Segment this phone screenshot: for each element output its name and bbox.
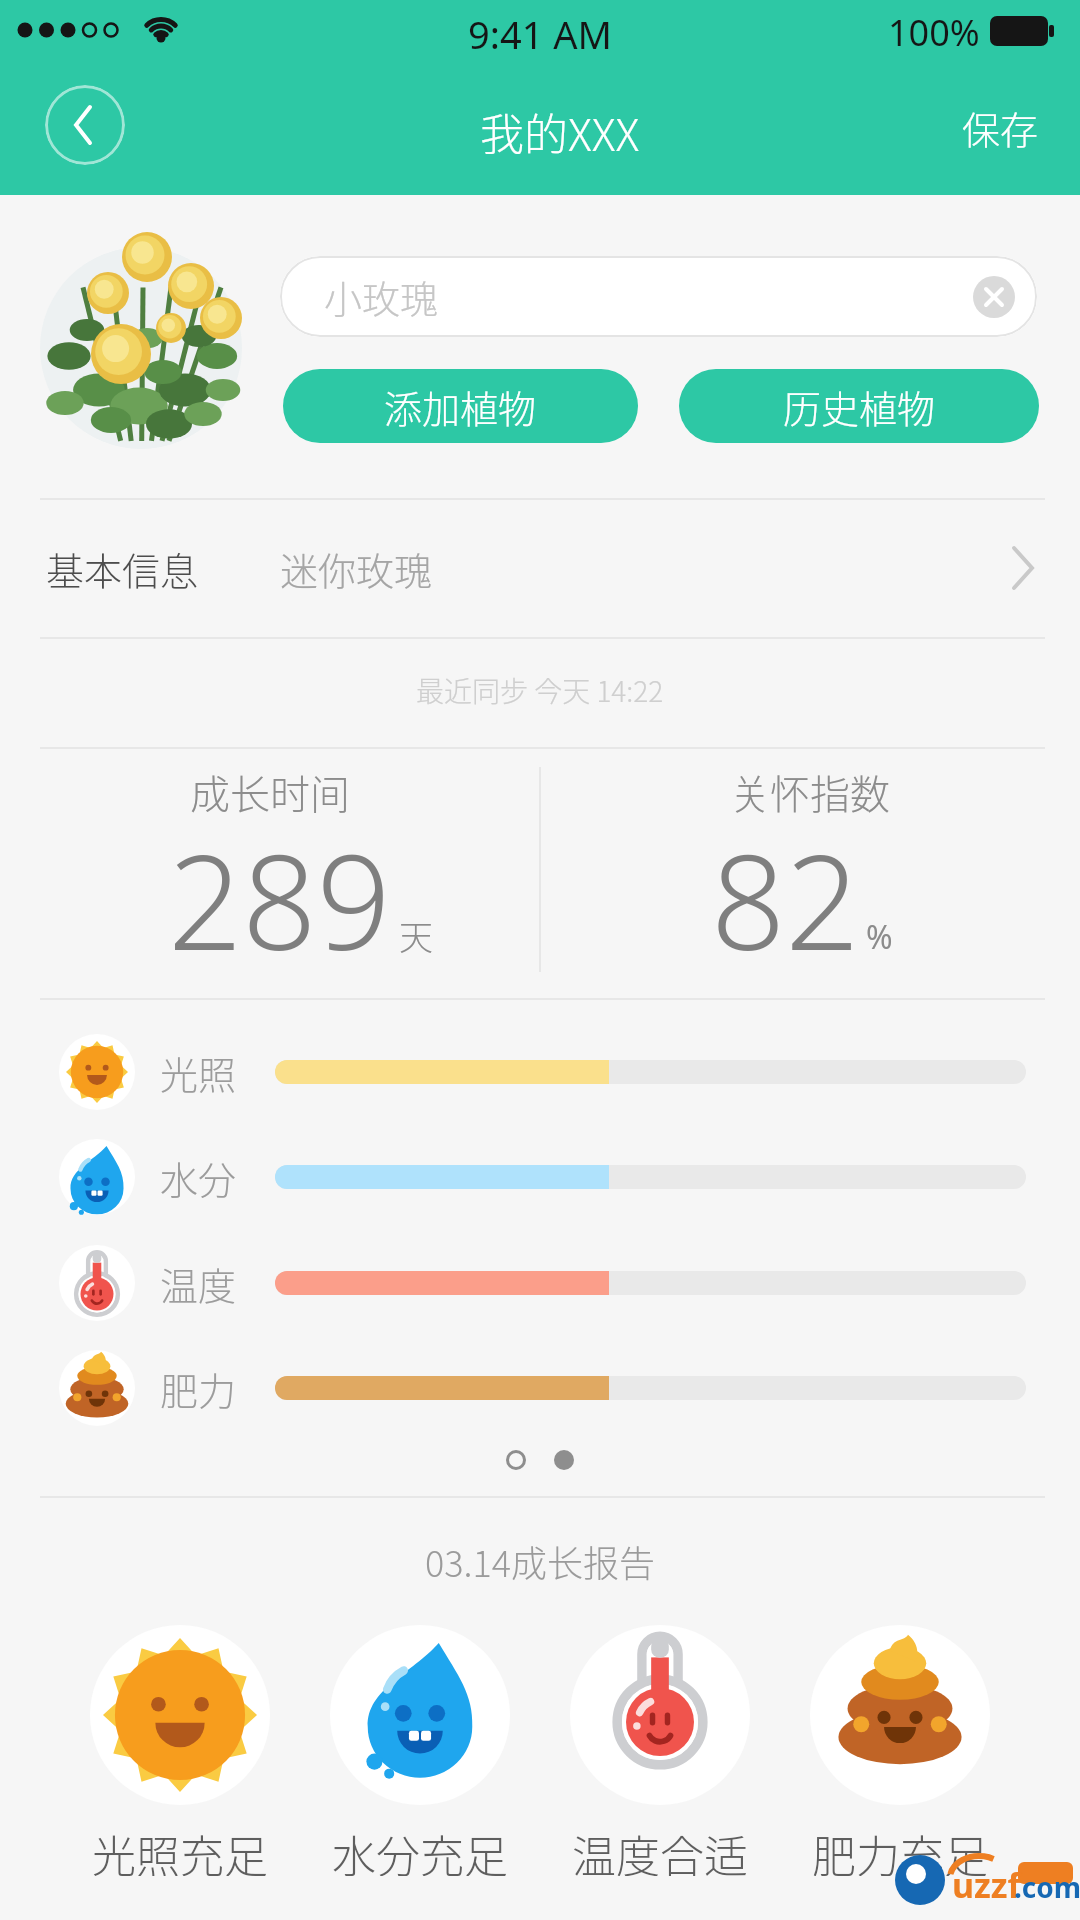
- staticText: %: [866, 915, 893, 959]
- staticText: 我的XXX: [480, 100, 640, 154]
- staticText: 成长时间: [190, 763, 350, 821]
- staticText: 光照充足: [92, 1822, 268, 1876]
- staticText: 光照: [160, 1045, 237, 1099]
- staticText: 基本信息: [46, 541, 199, 595]
- staticText: .com: [1014, 1868, 1080, 1906]
- button[interactable]: 小玫瑰: [280, 256, 1037, 337]
- staticText: 温度: [160, 1256, 237, 1310]
- staticText: 关怀指数: [730, 763, 890, 821]
- staticText: 水分充足: [332, 1822, 508, 1876]
- staticText: 肥力: [160, 1361, 237, 1415]
- staticText: 小玫瑰: [324, 269, 439, 324]
- staticText: 82: [711, 811, 860, 988]
- staticText: 添加植物: [384, 379, 537, 434]
- staticText: 肥力充足: [812, 1822, 988, 1876]
- button[interactable]: 添加植物: [283, 369, 638, 443]
- button[interactable]: [45, 85, 125, 165]
- staticText: 天: [399, 911, 433, 960]
- staticText: 历史植物: [783, 379, 936, 434]
- staticText: 289: [168, 811, 391, 988]
- staticText: 最近同步 今天 14:22: [416, 670, 664, 711]
- staticText: 温度合适: [572, 1822, 748, 1876]
- staticText: uzzf: [952, 1862, 1021, 1908]
- button[interactable]: 保存: [940, 100, 1060, 154]
- staticText: 100%: [888, 8, 980, 56]
- button[interactable]: 基本信息: [0, 500, 1080, 636]
- staticText: 水分: [160, 1150, 237, 1204]
- staticText: 迷你玫瑰: [280, 541, 433, 595]
- staticText: 03.14成长报告: [425, 1535, 656, 1585]
- staticText: 保存: [962, 100, 1039, 154]
- staticText: 9:41 AM: [468, 8, 613, 56]
- button[interactable]: 历史植物: [679, 369, 1039, 443]
